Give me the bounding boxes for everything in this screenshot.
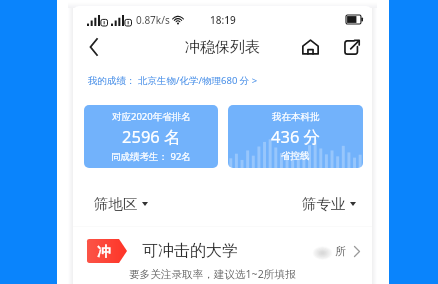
staticText: 同成绩考生： 92名 (111, 150, 191, 163)
staticText: 18:19 (210, 13, 236, 27)
button[interactable]: 冲 (73, 227, 372, 283)
button[interactable]: 对应2020年省排名 (84, 105, 218, 168)
staticText: 我在本科批 (272, 111, 320, 123)
staticText: 2596 名 (122, 125, 181, 148)
staticText: 所 (335, 244, 346, 258)
staticText: 0.87k/s (136, 13, 170, 27)
staticText: 筛地区 (94, 195, 138, 213)
button[interactable]: Back (81, 34, 107, 60)
staticText: 冲稳保列表 (185, 38, 260, 57)
button[interactable]: 我的成绩： 北京生物/化学/物理680 分 > (88, 62, 372, 99)
staticText: 省控线 (281, 150, 310, 162)
button[interactable]: 筛地区 (94, 195, 148, 213)
staticText: 筛专业 (302, 195, 346, 213)
button[interactable]: Home (298, 35, 322, 59)
button[interactable]: 我在本科批 (228, 105, 363, 168)
staticText: 要多关注录取率，建议选1~2所填报 (129, 267, 296, 281)
button[interactable]: 筛专业 (302, 195, 356, 213)
staticText: 可冲击的大学 (142, 241, 238, 261)
staticText: 436 分 (271, 125, 321, 148)
staticText: 我的成绩： 北京生物/化学/物理680 分 > (88, 74, 258, 87)
staticText: 冲 (97, 243, 111, 260)
button[interactable]: Share (340, 35, 364, 59)
staticText: 对应2020年省排名 (112, 110, 191, 123)
